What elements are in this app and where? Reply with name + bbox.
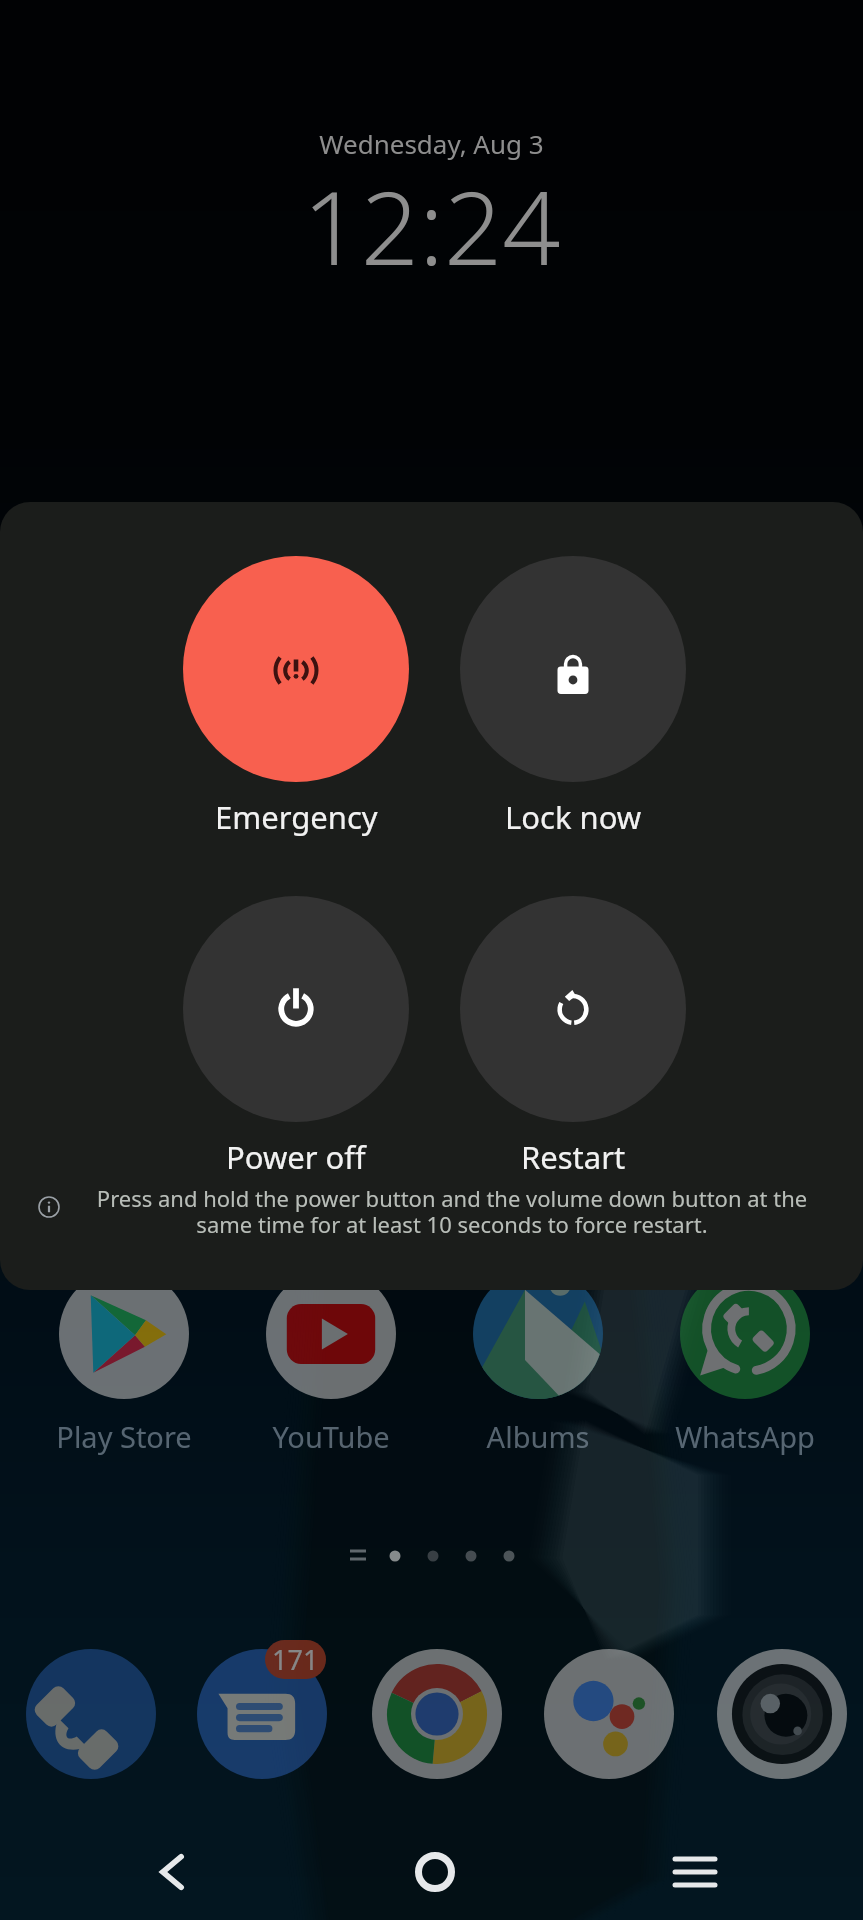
staticText: Restart — [521, 1136, 626, 1178]
staticText: 12:24 — [0, 156, 863, 295]
button[interactable]: Lock now — [460, 556, 686, 838]
staticText: Albums — [435, 1417, 641, 1456]
button[interactable]: Recent apps — [659, 1836, 731, 1908]
button[interactable]: Assistant — [544, 1649, 674, 1779]
button[interactable]: Play Store — [21, 1269, 227, 1399]
button[interactable]: Chrome — [372, 1649, 502, 1779]
staticText: Wednesday, Aug 3 — [0, 126, 863, 161]
staticText: 171 — [272, 1641, 319, 1678]
staticText: Lock now — [505, 796, 642, 838]
button[interactable]: Restart — [460, 896, 686, 1178]
staticText: Power off — [226, 1136, 366, 1178]
button[interactable]: Camera — [717, 1649, 847, 1779]
button[interactable]: Messages — [197, 1649, 327, 1779]
staticText: Emergency — [215, 796, 378, 838]
staticText: WhatsApp — [642, 1417, 848, 1456]
button[interactable]: YouTube — [228, 1269, 434, 1399]
button[interactable]: Emergency — [183, 556, 409, 838]
staticText: Play Store — [21, 1417, 227, 1456]
staticText: YouTube — [228, 1417, 434, 1456]
staticText: Press and hold the power button and the … — [78, 1183, 826, 1239]
button[interactable]: Back — [136, 1836, 208, 1908]
button[interactable]: Home — [399, 1836, 471, 1908]
button[interactable]: Phone — [26, 1649, 156, 1779]
button[interactable]: WhatsApp — [642, 1269, 848, 1399]
button[interactable]: Albums — [435, 1269, 641, 1399]
button[interactable]: Power off — [183, 896, 409, 1178]
